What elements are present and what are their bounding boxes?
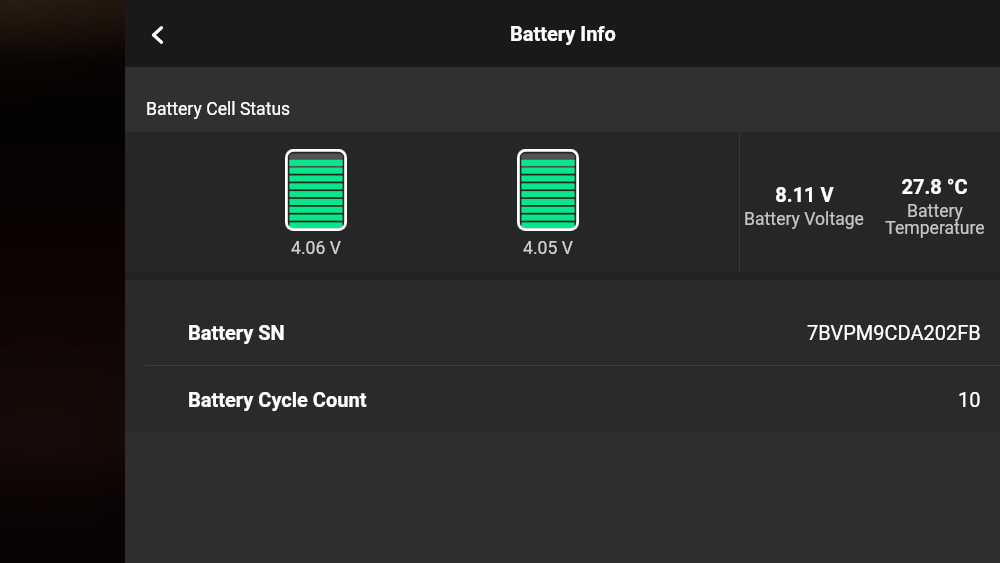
staticText: 4.06 V [291,238,341,259]
staticText: Battery Info [510,22,616,45]
staticText: Battery Voltage [744,209,864,230]
staticText: 7BVPM9CDA202FB [807,321,981,344]
button[interactable]: Battery Cycle Count [125,366,1000,432]
staticText: 10 [958,388,981,411]
staticText: 27.8 °C [901,175,968,198]
staticText: Battery Temperature [885,201,985,238]
button[interactable]: Battery SN [125,299,1000,366]
staticText: Battery Cycle Count [188,388,367,411]
staticText: Battery Cell Status [146,99,291,120]
staticText: 8.11 V [775,183,834,206]
button[interactable]: Back [129,6,185,62]
staticText: 4.05 V [523,238,573,259]
staticText: Battery SN [188,321,285,344]
